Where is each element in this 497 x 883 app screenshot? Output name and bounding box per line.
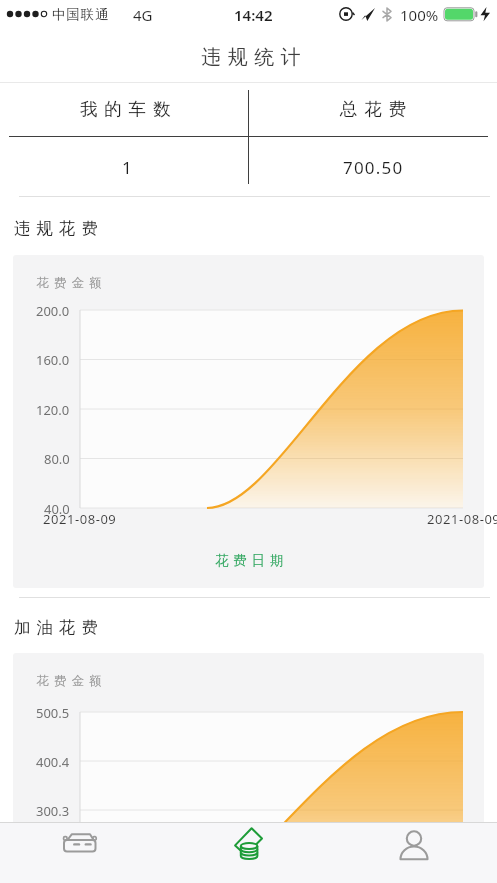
staticText: 2021-08-09	[43, 510, 117, 528]
button[interactable]	[0, 822, 166, 883]
staticText: 100%	[400, 5, 439, 25]
staticText: 40.0	[44, 500, 70, 518]
staticText: 300.3	[36, 802, 70, 820]
staticText: 120.0	[36, 401, 70, 419]
staticText: 我的车数	[80, 98, 178, 120]
button[interactable]	[331, 822, 497, 883]
staticText: 500.5	[36, 704, 70, 722]
staticText: 200.0	[36, 302, 70, 320]
staticText: 违规统计	[198, 45, 304, 70]
staticText: 花费金额	[34, 673, 104, 689]
staticText: 4G	[133, 5, 153, 25]
staticText: 2021-08-09	[427, 510, 497, 528]
staticText: 中国联通	[52, 6, 110, 23]
staticText: 14:42	[234, 5, 273, 25]
staticText: 违规花费	[11, 218, 101, 239]
staticText: 加油花费	[11, 617, 101, 638]
staticText: 1	[122, 156, 133, 179]
staticText: 160.0	[36, 351, 70, 369]
staticText: 700.50	[343, 156, 404, 179]
staticText: 总花费	[340, 98, 413, 120]
button[interactable]	[166, 822, 332, 883]
staticText: 花费金额	[34, 275, 104, 291]
staticText: 400.4	[36, 753, 70, 771]
staticText: 花费日期	[215, 552, 289, 569]
staticText: 80.0	[44, 450, 70, 468]
